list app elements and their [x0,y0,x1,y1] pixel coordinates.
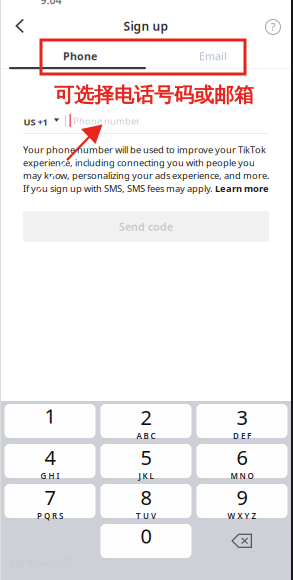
staticText: D E F [233,430,251,441]
staticText: 4 [44,444,55,470]
button[interactable]: 0 [100,524,191,558]
staticText: Your phone number will be used to improv… [23,143,270,195]
button[interactable]: 9 [196,484,287,518]
staticText: Phone number [73,115,140,127]
button[interactable]: US +1 [22,113,62,129]
staticText: US +1 [23,116,47,128]
button[interactable]: 8 [100,484,191,518]
staticText: Email [199,49,227,63]
staticText: 6 [236,444,247,470]
button[interactable]: Phone [43,49,117,63]
button[interactable]: 2 [100,404,191,438]
button[interactable]: 3 [196,404,287,438]
staticText: Sign up [123,18,168,34]
staticText: 1 [44,402,55,429]
staticText: 7 [44,484,55,510]
staticText: Send code [119,219,173,234]
staticText: 9:04 [40,0,61,7]
staticText: G H I [40,470,59,481]
staticText: ? [270,20,275,34]
button[interactable]: 1 [4,404,95,438]
staticText: T U V [136,510,156,521]
staticText: M N O [230,470,253,481]
staticText: 5 [140,444,151,470]
staticText: W X Y Z [227,510,256,521]
staticText: J K L [138,470,153,481]
button[interactable]: Send code [23,211,269,242]
staticText: P Q R S [37,510,63,521]
staticText: A B C [136,430,155,441]
staticText: 可选择电话号码或邮箱 [54,83,254,107]
staticText: Phone [63,49,97,63]
button[interactable]: 6 [196,444,287,478]
staticText: 0 [140,522,151,549]
button[interactable]: Delete [196,524,287,558]
button[interactable]: 4 [4,444,95,478]
staticText: 8 [140,484,151,510]
staticText: 2 [140,404,151,430]
button[interactable]: 7 [4,484,95,518]
button[interactable]: Email [176,49,250,63]
staticText: 3 [236,404,247,430]
button[interactable]: Help [262,16,284,38]
staticText: 9 [236,484,247,510]
button[interactable]: 5 [100,444,191,478]
button[interactable]: Back [5,14,35,38]
